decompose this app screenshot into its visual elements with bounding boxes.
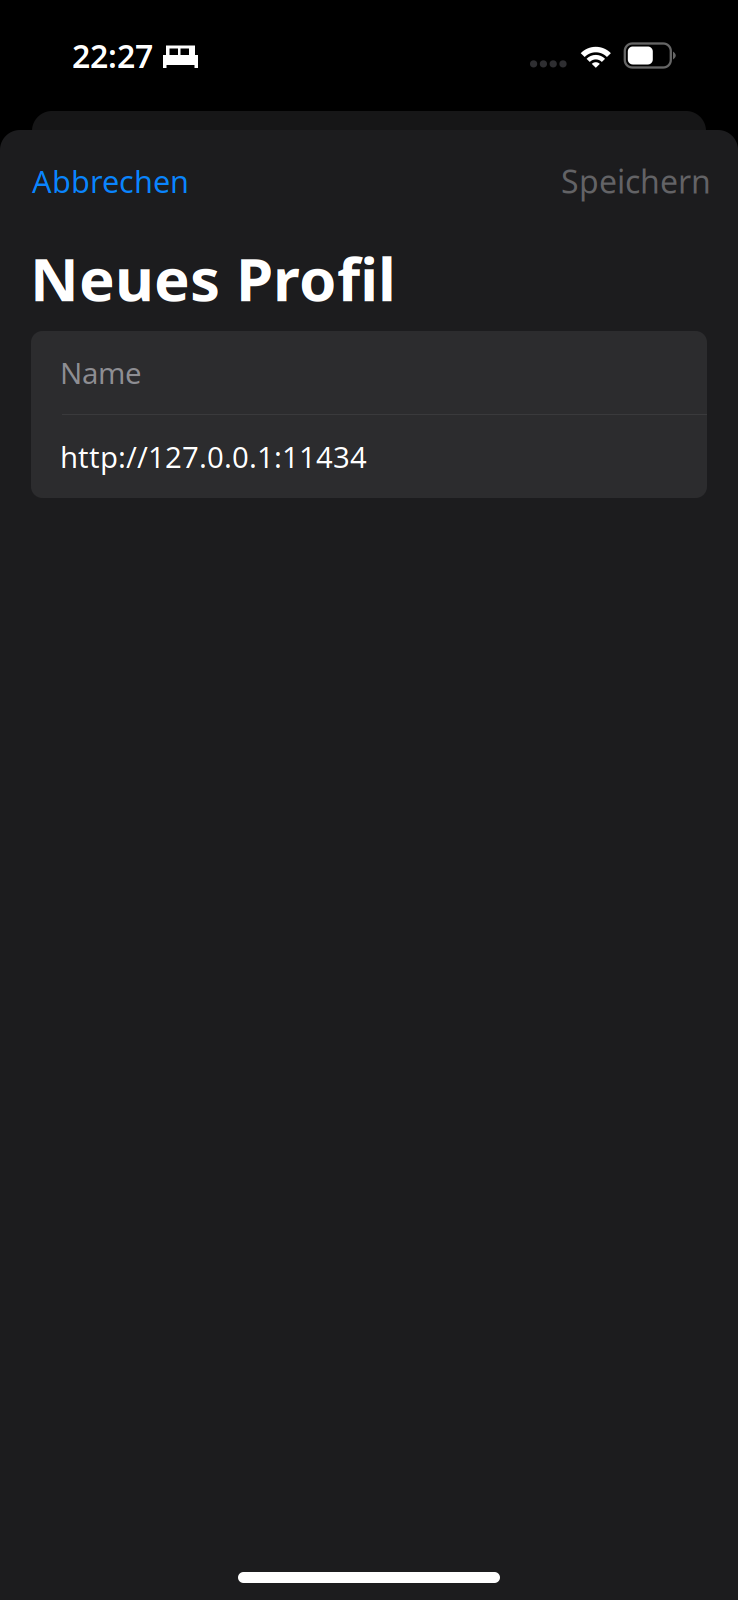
staticText: Neues Profil	[30, 238, 396, 318]
button[interactable]: Name	[31, 331, 707, 414]
staticText: 22:27	[72, 34, 153, 77]
button[interactable]: Speichern	[561, 165, 711, 197]
button[interactable]: Abbrechen	[32, 165, 189, 197]
button[interactable]: http://127.0.0.1:11434	[31, 415, 707, 498]
staticText: Abbrechen	[32, 161, 189, 201]
staticText: Speichern	[561, 160, 711, 202]
staticText: Name	[60, 353, 142, 392]
staticText: http://127.0.0.1:11434	[60, 437, 367, 476]
